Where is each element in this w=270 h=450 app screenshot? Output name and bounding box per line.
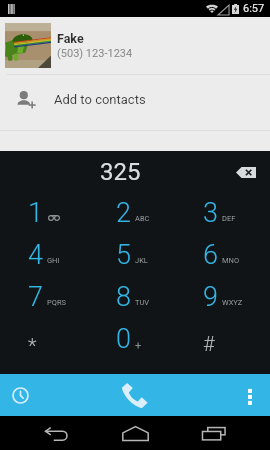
staticText: GHI: [47, 256, 60, 265]
staticText: PQRS: [47, 298, 66, 307]
button[interactable]: More options: [230, 374, 270, 416]
staticText: 6: [203, 239, 218, 271]
staticText: Add to contacts: [54, 92, 146, 107]
button[interactable]: 6: [175, 235, 262, 277]
button[interactable]: Call history: [0, 374, 40, 416]
staticText: *: [28, 334, 37, 357]
staticText: MNO: [222, 256, 240, 265]
button[interactable]: 5: [88, 235, 175, 277]
staticText: 4: [28, 239, 43, 271]
staticText: +: [135, 339, 142, 352]
button[interactable]: 2: [88, 193, 175, 235]
staticText: 8: [116, 281, 131, 313]
staticText: DEF: [222, 214, 236, 223]
button[interactable]: Add to contacts: [0, 75, 270, 130]
staticText: 6:57: [243, 2, 265, 15]
staticText: Fake: [57, 31, 84, 46]
button[interactable]: 0: [88, 319, 175, 361]
button[interactable]: 4: [0, 235, 88, 277]
staticText: 9: [203, 281, 218, 313]
button[interactable]: Recent apps: [181, 416, 247, 450]
button[interactable]: Backspace: [231, 159, 261, 185]
button[interactable]: 1: [0, 193, 88, 235]
staticText: JKL: [135, 256, 148, 265]
staticText: WXYZ: [222, 298, 243, 307]
staticText: 7: [28, 281, 43, 313]
staticText: 5: [116, 239, 131, 271]
button[interactable]: Back: [23, 416, 89, 450]
button[interactable]: 3: [175, 193, 262, 235]
button[interactable]: 7: [0, 277, 88, 319]
staticText: 2: [116, 197, 131, 229]
button[interactable]: Home: [102, 416, 168, 450]
button[interactable]: 9: [175, 277, 262, 319]
staticText: 0: [116, 323, 131, 355]
staticText: ABC: [135, 214, 150, 223]
button[interactable]: Fake: [0, 17, 270, 74]
button[interactable]: 8: [88, 277, 175, 319]
staticText: 325: [100, 158, 141, 186]
staticText: 3: [203, 197, 218, 229]
staticText: TUV: [135, 298, 150, 307]
staticText: #: [203, 332, 215, 355]
staticText: 1: [28, 197, 43, 229]
button[interactable]: Call: [90, 374, 180, 416]
button[interactable]: #: [175, 319, 262, 361]
staticText: (503) 123-1234: [57, 47, 133, 60]
button[interactable]: *: [0, 319, 88, 361]
